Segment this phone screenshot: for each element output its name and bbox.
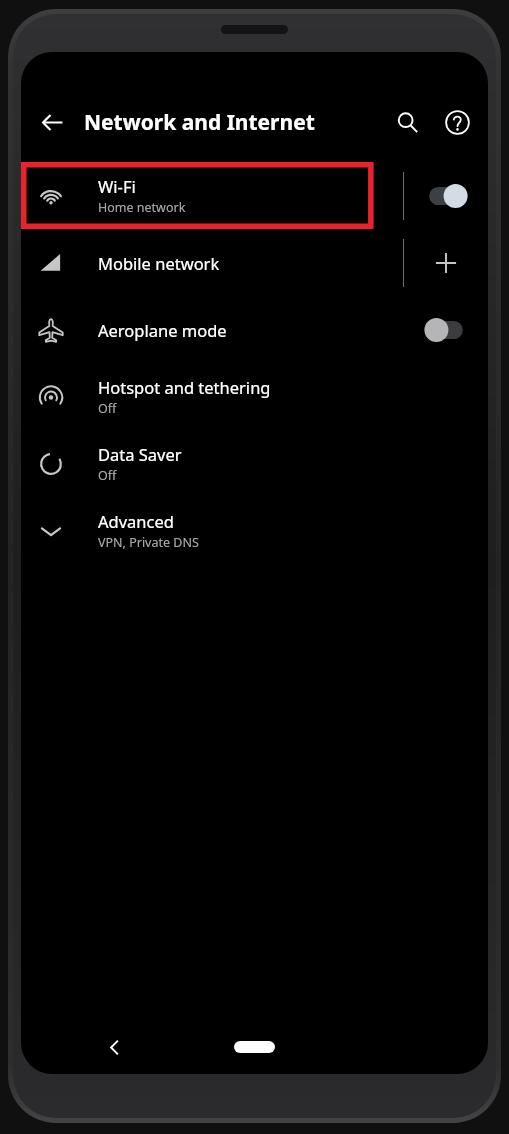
staticText: Data Saver [98, 443, 182, 465]
staticText: Mobile network [98, 252, 220, 274]
staticText: Off [98, 467, 117, 484]
button[interactable]: Hotspot and tethering [21, 363, 488, 430]
staticText: Hotspot and tethering [98, 376, 271, 398]
button[interactable]: Data Saver [21, 430, 488, 497]
button[interactable]: Mobile network [21, 229, 488, 296]
staticText: Off [98, 400, 117, 417]
button[interactable]: Back [97, 1030, 131, 1064]
staticText: Wi-Fi [98, 175, 136, 197]
button[interactable]: Turn off [417, 175, 475, 217]
button[interactable]: Search [386, 101, 428, 143]
staticText: Network and Internet [84, 108, 386, 137]
button[interactable]: Aeroplane mode [21, 296, 488, 363]
staticText: Advanced [98, 510, 174, 532]
button[interactable]: Help [436, 101, 478, 143]
button[interactable]: Turn on [417, 309, 475, 351]
button[interactable]: Advanced [21, 497, 488, 564]
button[interactable]: Wi-Fi [21, 162, 488, 229]
button[interactable]: Add network [424, 241, 468, 285]
button[interactable]: Home [234, 1041, 275, 1053]
staticText: Aeroplane mode [98, 319, 227, 341]
staticText: Home network [98, 199, 186, 216]
button[interactable]: Back [31, 101, 73, 143]
staticText: VPN, Private DNS [98, 534, 199, 551]
